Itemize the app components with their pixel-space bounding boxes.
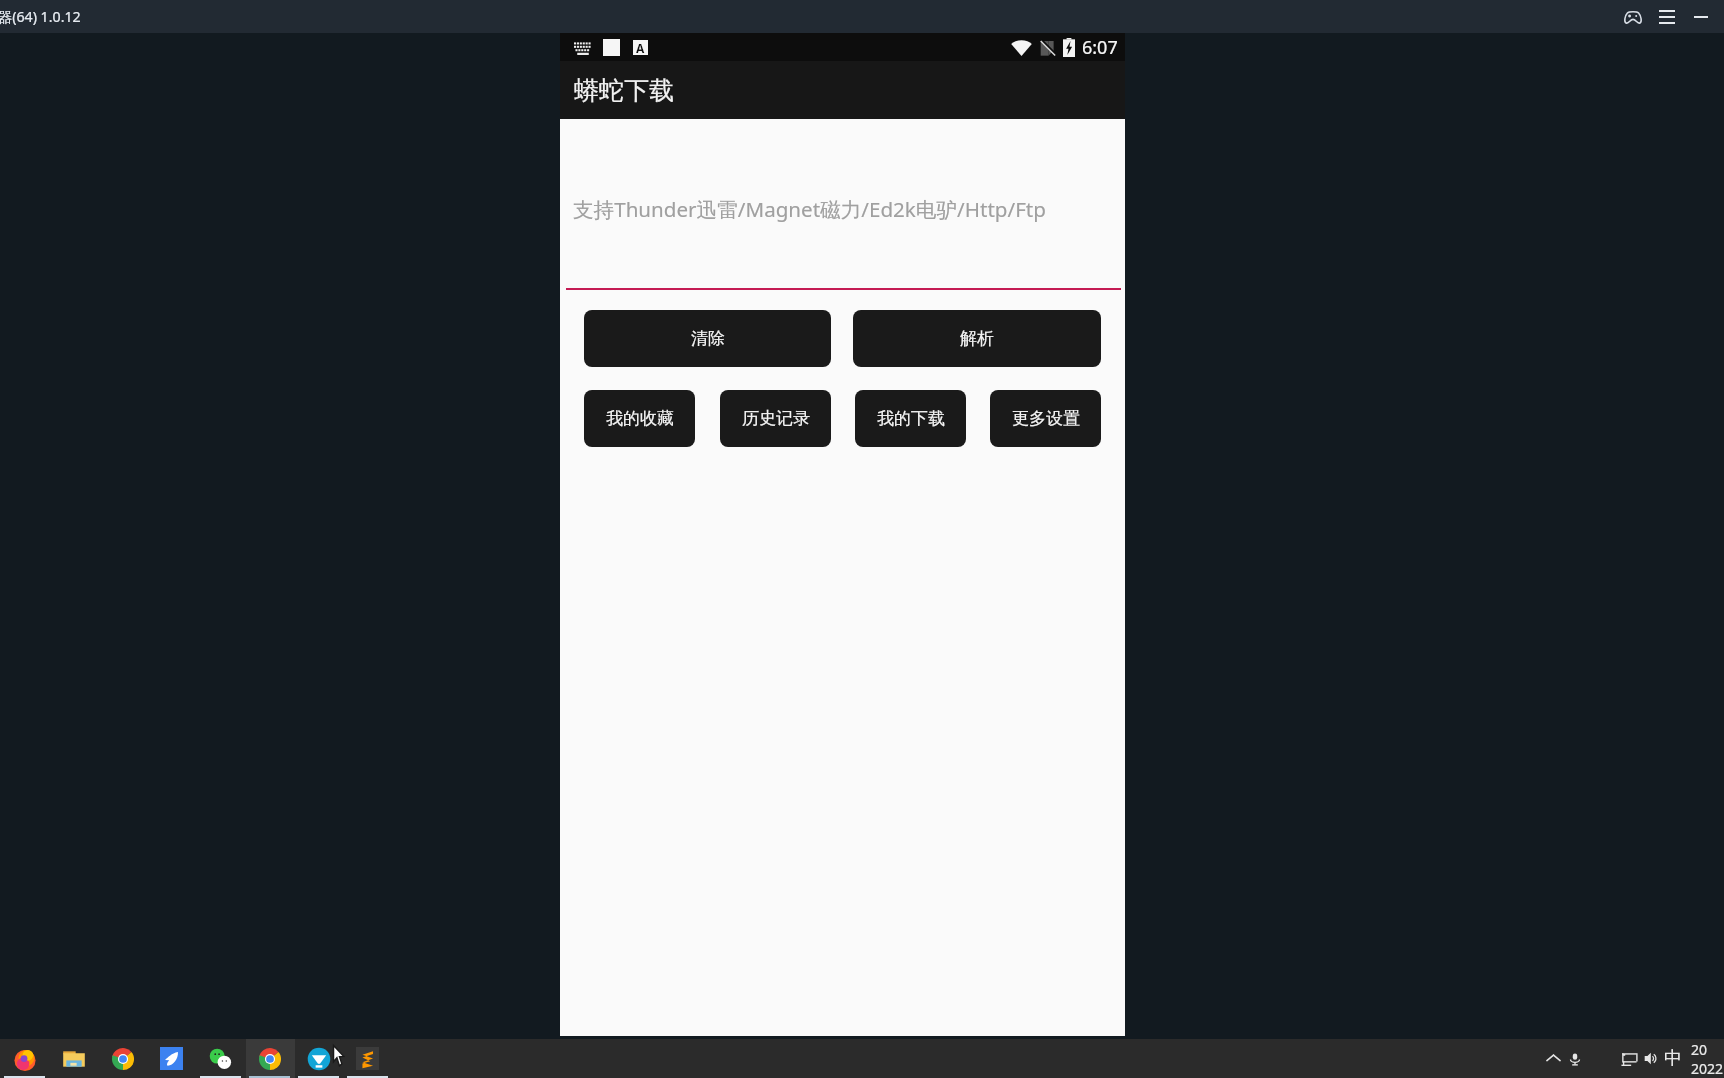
button[interactable]: Show hidden icons xyxy=(1542,1039,1564,1078)
button[interactable]: Sublime Text xyxy=(343,1039,392,1078)
staticText: 历史记录 xyxy=(742,408,810,429)
button[interactable]: 20 xyxy=(1691,1040,1724,1078)
staticText: 支持Thunder迅雷/Magnet磁力/Ed2k电驴/Http/Ftp xyxy=(573,195,1046,223)
button[interactable]: Firefox xyxy=(0,1039,49,1078)
staticText: 中 xyxy=(1664,1047,1682,1070)
button[interactable]: Microphone xyxy=(1564,1039,1586,1078)
staticText: A xyxy=(636,40,645,55)
button[interactable]: 历史记录 xyxy=(720,390,831,447)
button[interactable]: Chrome window xyxy=(245,1039,294,1078)
button[interactable]: File Explorer xyxy=(49,1039,98,1078)
button[interactable]: Chrome xyxy=(98,1039,147,1078)
staticText: 2022 xyxy=(1691,1059,1724,1078)
staticText: 我的下载 xyxy=(877,408,945,429)
button[interactable]: 解析 xyxy=(853,310,1101,367)
button[interactable]: Network xyxy=(1618,1039,1640,1078)
button[interactable]: Menu xyxy=(1650,0,1684,33)
staticText: 20 xyxy=(1691,1040,1708,1059)
button[interactable]: 更多设置 xyxy=(990,390,1101,447)
button[interactable]: Volume xyxy=(1640,1039,1662,1078)
staticText: 我的收藏 xyxy=(606,408,674,429)
staticText: 解析 xyxy=(960,328,994,349)
button[interactable]: Game mode xyxy=(1616,0,1650,33)
button[interactable]: WeChat xyxy=(196,1039,245,1078)
button[interactable]: 我的收藏 xyxy=(584,390,695,447)
staticText: 蟒蛇下载 xyxy=(574,75,674,106)
button[interactable]: Input method xyxy=(1662,1039,1684,1078)
staticText: 6:07 xyxy=(1082,35,1118,60)
button[interactable]: Foxmail xyxy=(147,1039,196,1078)
staticText: 清除 xyxy=(691,328,725,349)
button[interactable]: 清除 xyxy=(584,310,831,367)
button[interactable]: Thunder xyxy=(294,1039,343,1078)
button[interactable]: Minimize xyxy=(1684,0,1718,33)
staticText: 器(64) 1.0.12 xyxy=(0,7,81,26)
staticText: 更多设置 xyxy=(1012,408,1080,429)
button[interactable]: Download link input xyxy=(560,119,1125,290)
button[interactable]: 我的下载 xyxy=(855,390,966,447)
